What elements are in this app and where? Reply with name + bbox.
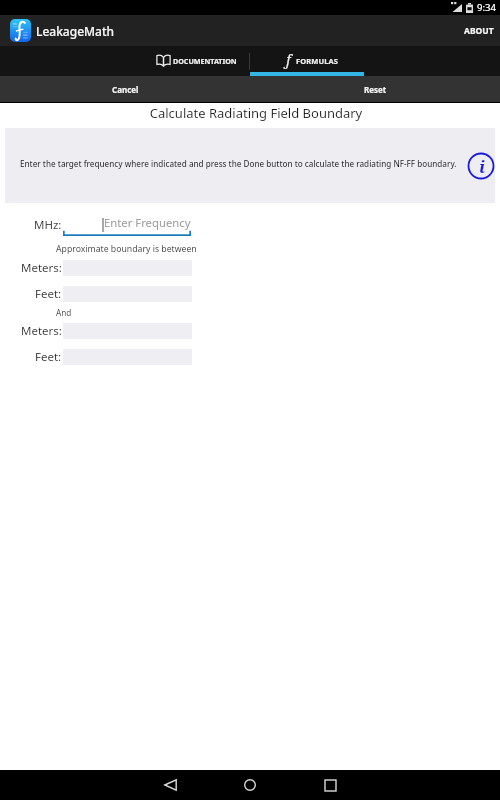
staticText: Meters: (21, 323, 62, 339)
staticText: Feet: (35, 349, 62, 365)
button[interactable]: Information (467, 152, 495, 180)
staticText: Meters: (21, 260, 62, 276)
staticText: Cancel (112, 84, 139, 95)
staticText: And (56, 307, 72, 318)
staticText: ABOUT (464, 25, 494, 37)
staticText: Approximate boundary is between (56, 243, 197, 255)
staticText: Feet: (35, 286, 62, 302)
button[interactable]: Home (210, 770, 290, 800)
staticText: Reset (364, 84, 387, 95)
button[interactable]: ƒ (250, 46, 364, 76)
button[interactable]: ABOUT (452, 15, 500, 46)
button[interactable]: Enter Frequency (63, 216, 191, 236)
staticText: Enter the target frequency where indicat… (20, 158, 457, 169)
staticText: i (479, 155, 486, 178)
staticText: DOCUMENTATION (173, 56, 237, 66)
staticText: LeakageMath (36, 23, 115, 39)
button[interactable]: Cancel (0, 76, 250, 103)
staticText: MHz: (34, 217, 62, 233)
button[interactable]: Recents (290, 770, 370, 800)
button[interactable]: DOCUMENTATION (136, 46, 250, 76)
staticText: Enter Frequency (104, 215, 191, 230)
button[interactable]: Back (130, 770, 210, 800)
button[interactable]: Reset (250, 76, 500, 103)
staticText: 9:34 (477, 1, 496, 14)
staticText: Calculate Radiating Field Boundary (6, 104, 500, 122)
staticText: ƒ (285, 50, 291, 69)
staticText: FORMULAS (296, 56, 339, 66)
